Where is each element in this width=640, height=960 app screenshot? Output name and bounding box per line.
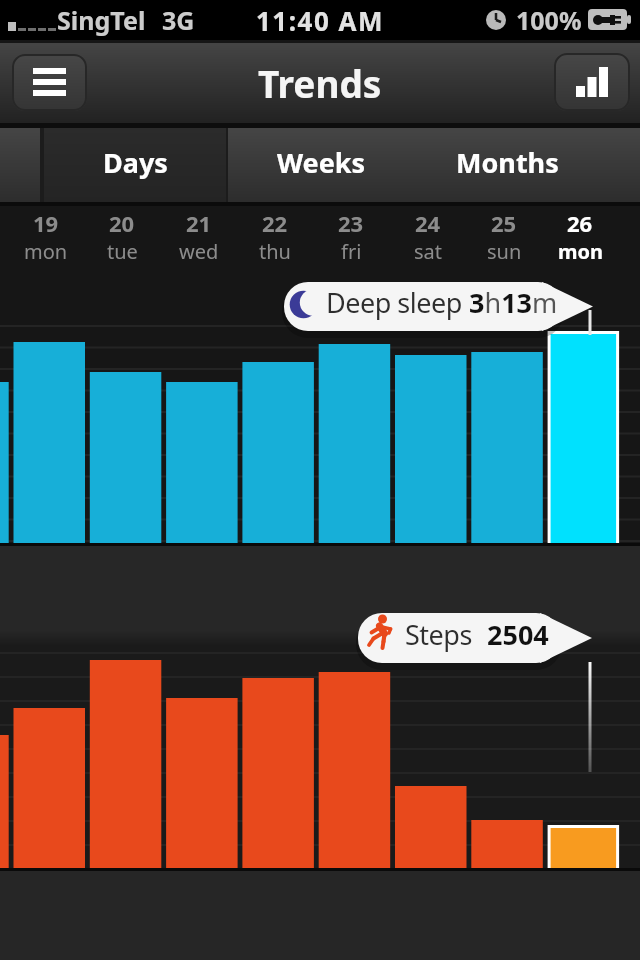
button[interactable]	[12, 54, 87, 111]
staticText: sat	[414, 238, 443, 265]
staticText: 100%	[516, 3, 582, 37]
staticText: Deep sleep	[326, 284, 462, 321]
button[interactable]: 26	[544, 208, 616, 276]
staticText: 26	[567, 208, 593, 238]
staticText: Weeks	[277, 144, 366, 181]
button[interactable]: 25	[468, 208, 540, 276]
button[interactable]: 22	[239, 208, 311, 276]
button[interactable]: Months	[414, 128, 600, 202]
button[interactable]: Weeks	[228, 128, 414, 202]
staticText: 3h13m	[469, 284, 558, 321]
staticText: mon	[558, 238, 603, 265]
staticText: thu	[259, 238, 291, 265]
staticText: Steps	[405, 616, 472, 653]
staticText: 11:40 AM	[256, 3, 385, 38]
button[interactable]: 20	[86, 208, 158, 276]
button[interactable]: 23	[315, 208, 387, 276]
staticText: sun	[487, 238, 522, 265]
staticText: tue	[107, 238, 138, 265]
staticText: 25	[491, 208, 517, 238]
staticText: Trends	[258, 58, 382, 108]
staticText: 22	[262, 208, 288, 238]
staticText: mon	[24, 238, 68, 265]
button[interactable]: 21	[163, 208, 235, 276]
button[interactable]: 19	[10, 208, 82, 276]
button[interactable]	[554, 53, 630, 111]
staticText: 24	[415, 208, 441, 238]
staticText: fri	[341, 238, 362, 265]
staticText: wed	[179, 238, 219, 265]
staticText: 19	[33, 208, 59, 238]
button[interactable]: 24	[392, 208, 464, 276]
staticText: 3G	[162, 3, 195, 37]
staticText: Months	[456, 144, 559, 181]
button[interactable]: Days	[44, 128, 226, 202]
staticText: 21	[186, 208, 212, 238]
staticText: 2504	[487, 616, 549, 653]
staticText: 23	[338, 208, 364, 238]
staticText: SingTel	[57, 3, 146, 37]
staticText: Days	[103, 144, 168, 181]
staticText: 20	[109, 208, 135, 238]
